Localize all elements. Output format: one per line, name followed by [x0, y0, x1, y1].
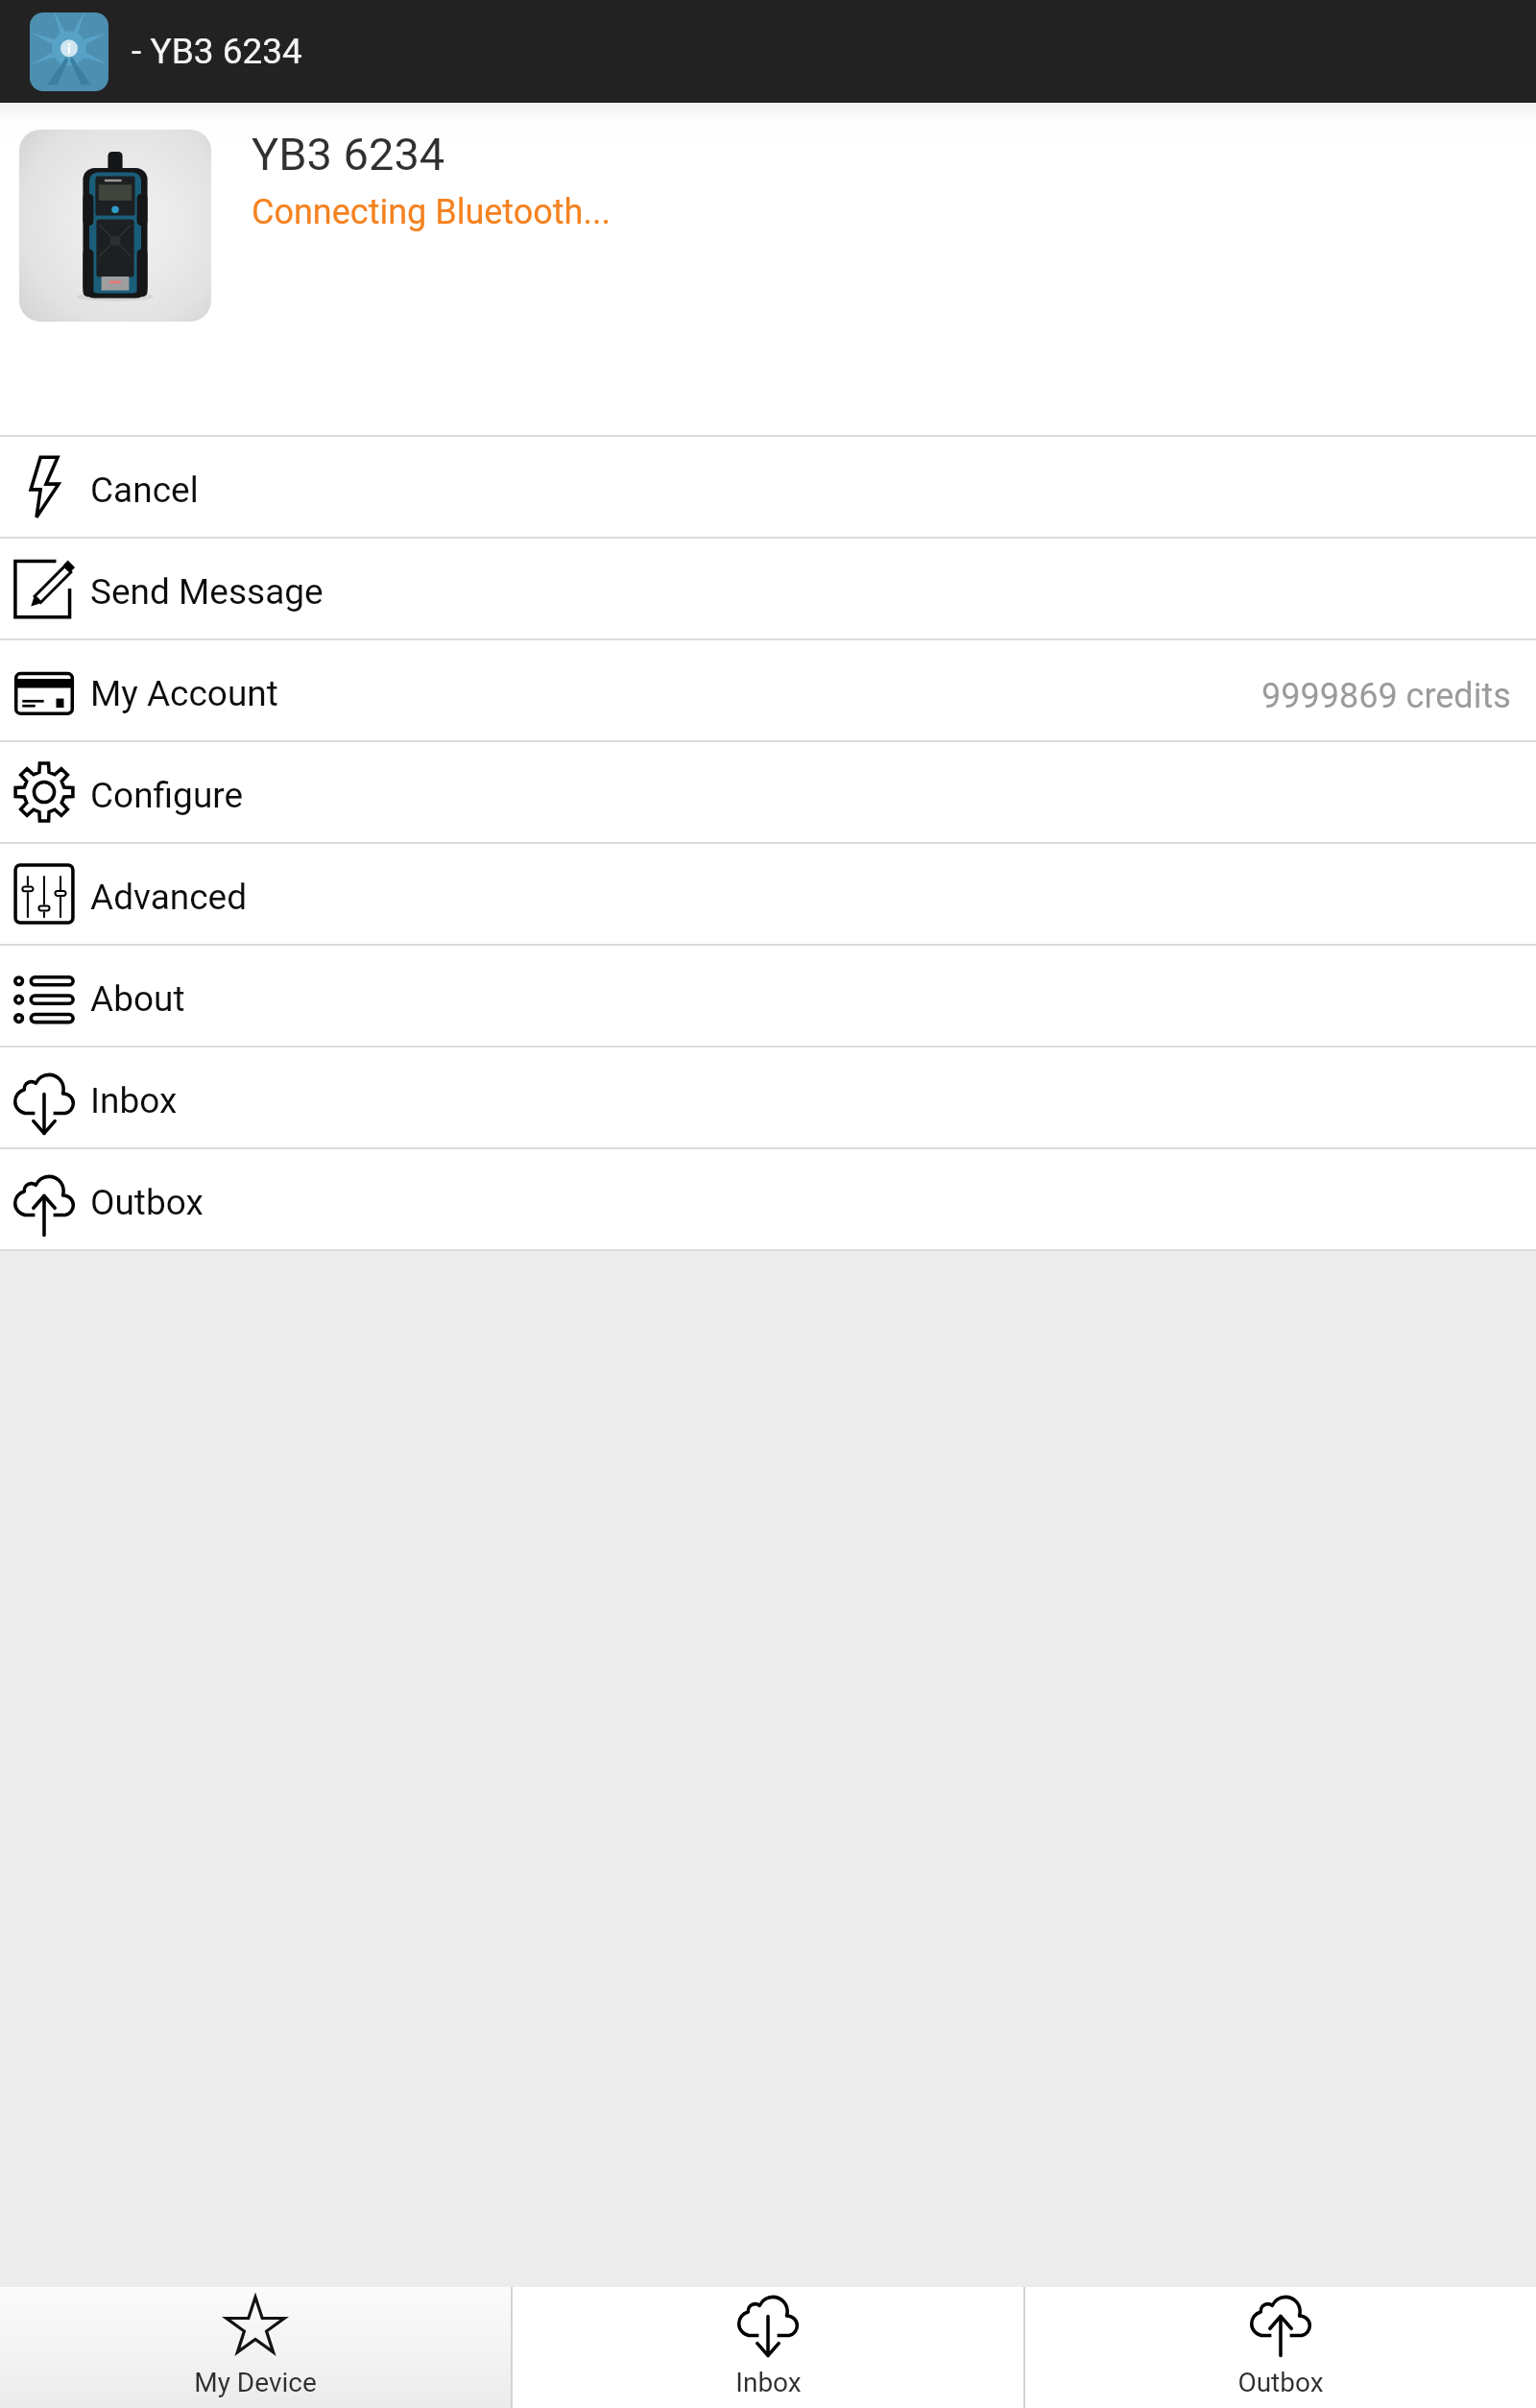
staticText: My Account [90, 673, 278, 714]
staticText: Outbox [1237, 2367, 1324, 2398]
staticText: Advanced [90, 877, 248, 918]
staticText: Inbox [735, 2367, 802, 2398]
button[interactable]: Inbox [0, 1047, 1536, 1147]
button[interactable]: About [0, 946, 1536, 1046]
staticText: Inbox [90, 1080, 178, 1121]
button[interactable]: My Account [0, 640, 1536, 740]
button[interactable]: Advanced [0, 844, 1536, 944]
button[interactable]: My Device [0, 2287, 511, 2408]
staticText: YB3 6234 [252, 128, 445, 181]
button[interactable]: YB3 device photo [0, 103, 1536, 435]
staticText: My Device [194, 2367, 317, 2398]
staticText: Send Message [90, 571, 324, 613]
button[interactable]: Send Message [0, 539, 1536, 638]
staticText: Cancel [90, 470, 199, 511]
button[interactable]: Outbox [0, 1149, 1536, 1249]
staticText: Connecting Bluetooth... [252, 192, 611, 232]
button[interactable]: Outbox [1025, 2287, 1536, 2408]
other: YB3 device photo [19, 130, 211, 322]
button[interactable]: YB Connect home [30, 12, 108, 91]
button[interactable]: Configure [0, 742, 1536, 842]
staticText: About [90, 978, 185, 1020]
staticText: - YB3 6234 [132, 31, 302, 72]
button[interactable]: Inbox [513, 2287, 1023, 2408]
staticText: Configure [90, 775, 244, 816]
staticText: 9999869 credits [1261, 676, 1511, 716]
button[interactable]: Cancel [0, 437, 1536, 537]
staticText: Outbox [90, 1182, 204, 1223]
